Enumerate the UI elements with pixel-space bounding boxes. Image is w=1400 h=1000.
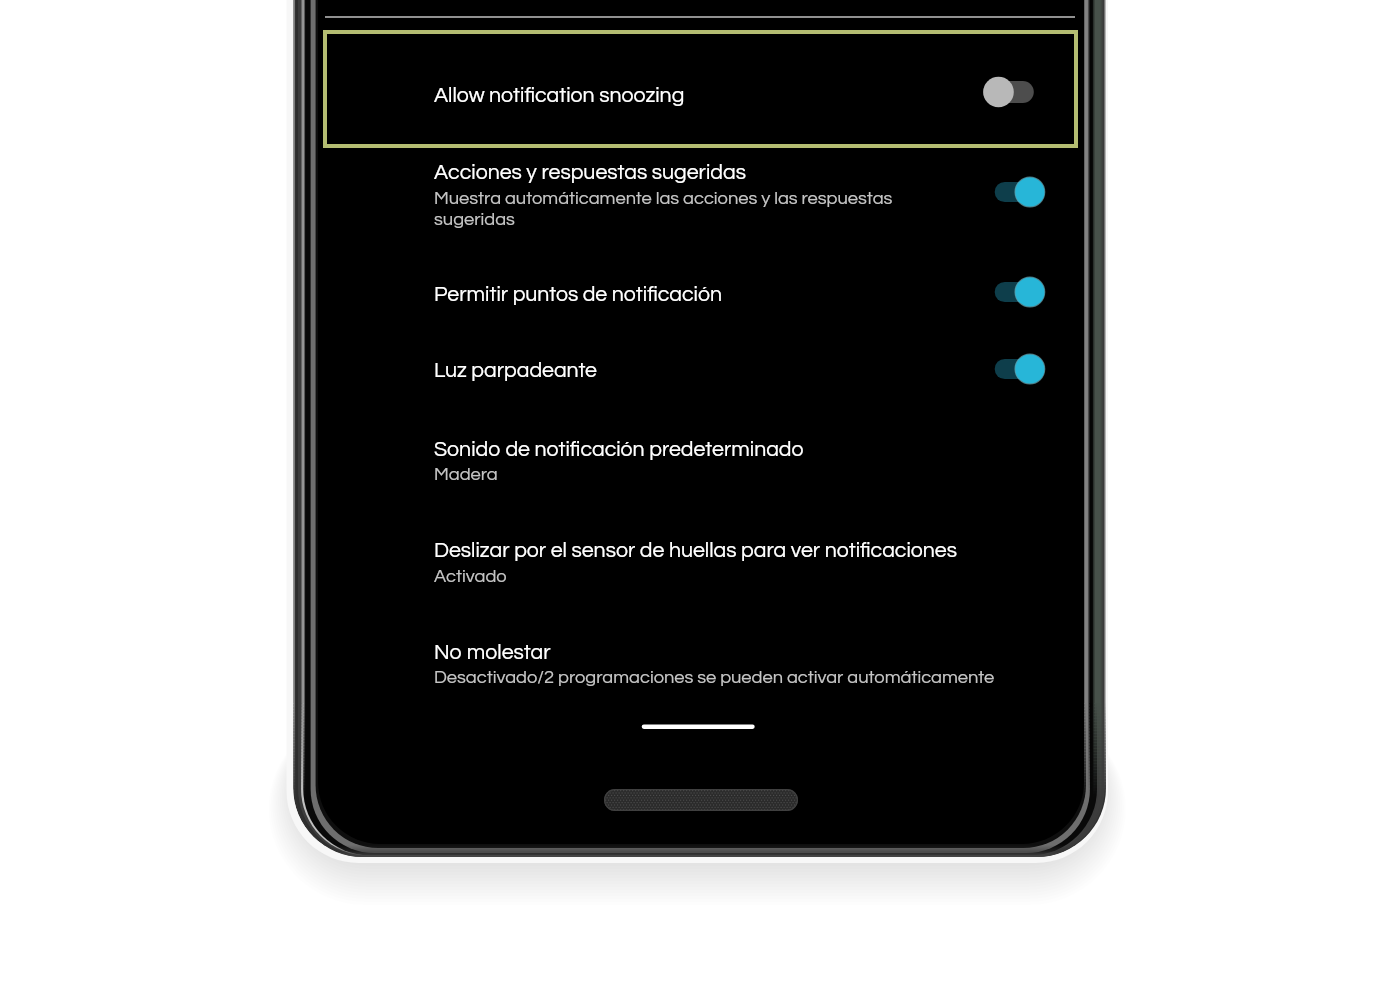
button[interactable]: Acciones y respuestas sugeridas: [323, 150, 1078, 244]
staticText: No molestar: [434, 642, 551, 664]
button[interactable]: Setting on: [988, 349, 1052, 389]
staticText: Desactivado/2 programaciones se pueden a…: [434, 668, 995, 687]
staticText: Acciones y respuestas sugeridas: [434, 162, 746, 184]
staticText: Muestra automáticamente las acciones y l…: [434, 189, 893, 208]
button[interactable]: Luz parpadeante: [323, 330, 1078, 402]
button[interactable]: Allow notification snoozing: [323, 30, 1078, 148]
button[interactable]: No molestar: [323, 614, 1078, 704]
button[interactable]: Permitir puntos de notificación: [323, 252, 1078, 326]
button[interactable]: Setting on: [988, 272, 1052, 312]
button[interactable]: Setting off: [977, 72, 1041, 112]
staticText: Allow notification snoozing: [434, 85, 685, 107]
staticText: Madera: [434, 465, 498, 484]
staticText: Deslizar por el sensor de huellas para v…: [434, 540, 957, 562]
staticText: Permitir puntos de notificación: [434, 284, 722, 306]
staticText: sugeridas: [434, 210, 515, 229]
button[interactable]: Sonido de notificación predeterminado: [323, 410, 1078, 500]
button[interactable]: Deslizar por el sensor de huellas para v…: [323, 512, 1078, 602]
staticText: Activado: [434, 567, 507, 586]
button[interactable]: Setting on: [988, 172, 1052, 212]
staticText: Sonido de notificación predeterminado: [434, 439, 804, 461]
staticText: Luz parpadeante: [434, 360, 597, 382]
